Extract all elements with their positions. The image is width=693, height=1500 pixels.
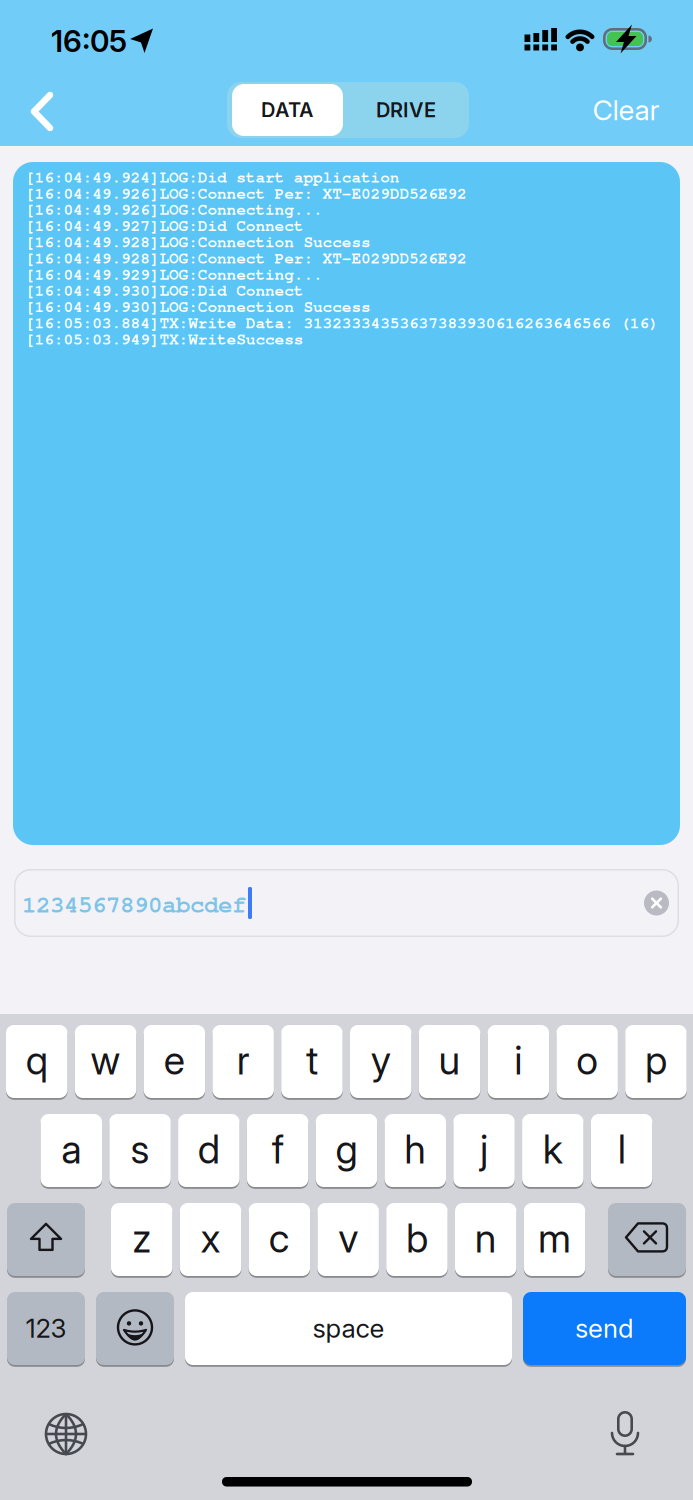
staticText: r — [237, 1037, 250, 1084]
staticText: [16:04:49.929]LOG:Connecting... — [25, 262, 323, 284]
staticText: h — [404, 1126, 426, 1173]
button[interactable]: g — [316, 1114, 377, 1189]
staticText: a — [61, 1126, 81, 1173]
staticText: i — [514, 1037, 522, 1084]
button[interactable]: y — [350, 1025, 411, 1100]
button[interactable]: f — [247, 1114, 308, 1189]
button[interactable]: e — [144, 1025, 205, 1100]
staticText: 16:05 — [51, 23, 127, 59]
button[interactable]: DRIVE — [346, 84, 466, 136]
staticText: Clear — [592, 93, 659, 127]
button[interactable]: z — [111, 1203, 172, 1278]
button[interactable]: x — [180, 1203, 241, 1278]
staticText: o — [576, 1037, 598, 1084]
button[interactable]: d — [178, 1114, 240, 1189]
staticText: [16:04:49.927]LOG:Did Connect — [25, 214, 304, 235]
staticText: v — [338, 1215, 358, 1262]
button[interactable]: p — [625, 1025, 687, 1100]
staticText: q — [26, 1037, 48, 1084]
button[interactable]: o — [556, 1025, 618, 1100]
button[interactable]: s — [109, 1114, 171, 1189]
staticText: n — [475, 1215, 497, 1262]
button[interactable]: Delete — [608, 1203, 686, 1278]
button[interactable]: n — [455, 1203, 516, 1278]
staticText: send — [575, 1313, 634, 1344]
staticText: [16:04:49.926]LOG:Connecting... — [25, 198, 323, 219]
button[interactable]: i — [488, 1025, 549, 1100]
staticText: [16:04:49.928]LOG:Connection Success — [25, 230, 371, 252]
staticText: g — [335, 1126, 357, 1173]
staticText: [16:05:03.884]TX:Write Data: 31323334353… — [25, 311, 659, 333]
staticText: DRIVE — [376, 98, 436, 122]
button[interactable]: send — [523, 1292, 686, 1367]
staticText: 1234567890abcdef — [22, 887, 246, 919]
button[interactable]: k — [522, 1114, 584, 1189]
staticText: p — [645, 1037, 667, 1084]
button[interactable]: u — [419, 1025, 480, 1100]
staticText: [16:04:49.930]LOG:Did Connect — [25, 279, 304, 300]
button[interactable]: Back — [14, 81, 74, 141]
button[interactable]: Message input — [14, 869, 679, 937]
button[interactable]: DATA — [232, 84, 343, 136]
staticText: d — [198, 1126, 220, 1173]
staticText: b — [406, 1215, 428, 1262]
staticText: t — [306, 1037, 318, 1084]
button[interactable]: Shift — [7, 1203, 85, 1278]
staticText: w — [90, 1037, 120, 1084]
staticText: f — [272, 1126, 284, 1173]
button[interactable]: j — [453, 1114, 515, 1189]
staticText: e — [164, 1037, 185, 1084]
staticText: [16:04:49.928]LOG:Connect Per: XT-E029DD… — [25, 246, 467, 268]
staticText: [16:05:03.949]TX:WriteSuccess — [25, 327, 304, 349]
button[interactable]: c — [249, 1203, 310, 1278]
button[interactable]: Emoji — [96, 1292, 174, 1367]
staticText: [16:04:49.924]LOG:Did start application — [25, 165, 400, 187]
staticText: DATA — [261, 98, 314, 122]
staticText: y — [371, 1037, 391, 1084]
button[interactable]: Clear text — [644, 890, 669, 915]
staticText: j — [480, 1126, 488, 1173]
staticText: x — [201, 1215, 221, 1262]
button[interactable]: m — [524, 1203, 585, 1278]
button[interactable]: Next keyboard — [42, 1410, 90, 1458]
button[interactable]: l — [591, 1114, 652, 1189]
staticText: [16:04:49.930]LOG:Connection Success — [25, 295, 371, 316]
button[interactable]: space — [185, 1292, 512, 1367]
button[interactable]: 123 — [7, 1292, 85, 1367]
button[interactable]: q — [6, 1025, 67, 1100]
staticText: 123 — [25, 1313, 66, 1344]
staticText: s — [131, 1126, 150, 1173]
staticText: z — [132, 1215, 151, 1262]
staticText: m — [538, 1215, 571, 1262]
button[interactable]: t — [281, 1025, 343, 1100]
staticText: [16:04:49.926]LOG:Connect Per: XT-E029DD… — [25, 181, 467, 203]
button[interactable]: a — [40, 1114, 102, 1189]
staticText: u — [438, 1037, 460, 1084]
button[interactable]: v — [317, 1203, 379, 1278]
button[interactable]: b — [386, 1203, 448, 1278]
staticText: k — [543, 1126, 563, 1173]
button[interactable]: h — [384, 1114, 446, 1189]
button[interactable]: Dictate — [601, 1410, 649, 1462]
button[interactable]: w — [75, 1025, 136, 1100]
staticText: c — [269, 1215, 290, 1262]
staticText: l — [618, 1126, 626, 1173]
staticText: space — [312, 1313, 384, 1344]
button[interactable]: Clear — [592, 93, 659, 127]
button[interactable]: r — [212, 1025, 274, 1100]
